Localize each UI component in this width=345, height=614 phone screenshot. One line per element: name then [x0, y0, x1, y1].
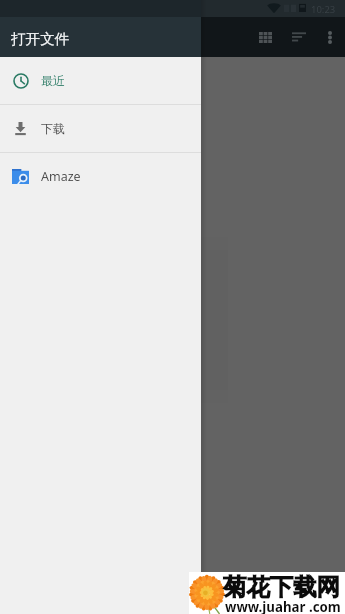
button[interactable]: Amaze — [0, 153, 201, 200]
staticText: 10:23 — [311, 3, 336, 16]
staticText: 打开文件 — [11, 30, 70, 48]
button[interactable]: Sort — [283, 17, 314, 57]
staticText: 最近 — [41, 73, 65, 88]
staticText: Amaze — [41, 168, 81, 185]
button[interactable]: 下载 — [0, 105, 201, 152]
staticText: 下载 — [41, 121, 65, 136]
staticText: www.juahar .com — [225, 598, 341, 614]
button[interactable]: Grid view — [250, 17, 281, 57]
staticText: 菊花下载网 — [223, 572, 340, 601]
button[interactable]: 最近 — [0, 57, 201, 104]
button[interactable]: More options — [314, 17, 345, 57]
